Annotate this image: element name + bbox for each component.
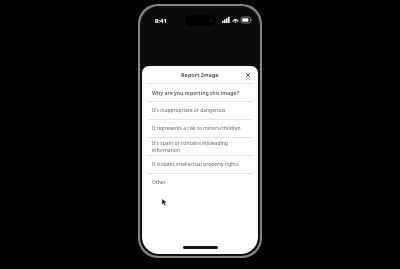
staticText: Other — [152, 179, 166, 186]
button[interactable]: Close — [243, 70, 253, 80]
button[interactable]: It's inappropriate or dangerous — [142, 102, 258, 119]
staticText: Report Image — [181, 71, 219, 78]
staticText: Why are you reporting this image? — [152, 89, 240, 96]
button[interactable]: Other — [142, 174, 258, 191]
button[interactable]: It violates intellectual property rights — [142, 156, 258, 173]
button[interactable]: It's spam or contains misleading informa… — [142, 138, 258, 155]
staticText: It's inappropriate or dangerous — [152, 107, 226, 114]
button[interactable]: It represents a risk to minors/children — [142, 120, 258, 137]
staticText: It violates intellectual property rights — [152, 161, 239, 168]
staticText: It represents a risk to minors/children — [152, 125, 241, 132]
staticText: 9:41 — [155, 17, 167, 25]
staticText: It's spam or contains misleading informa… — [152, 140, 250, 154]
